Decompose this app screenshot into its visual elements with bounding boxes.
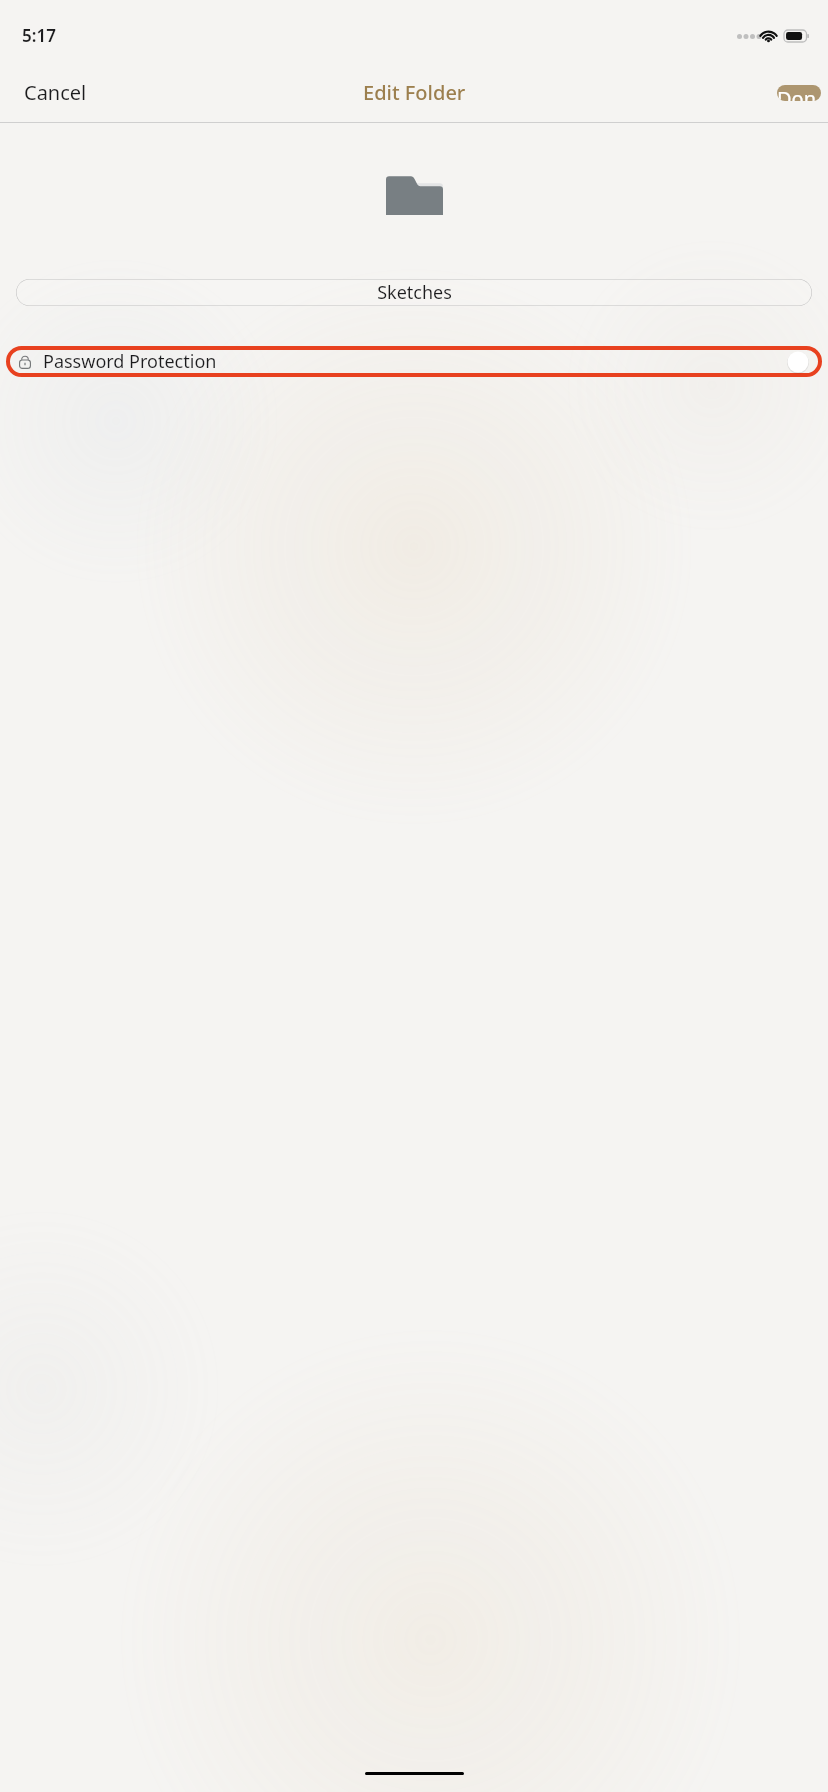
staticText: Done (777, 85, 821, 101)
staticText: Password Protection (43, 349, 217, 374)
staticText: 5:17 (22, 24, 56, 47)
staticText: Sketches (377, 280, 452, 305)
staticText: Edit Folder (363, 79, 466, 106)
button[interactable]: Cancel (12, 71, 99, 114)
button[interactable]: Done (777, 85, 821, 101)
button[interactable]: Sketches (16, 279, 812, 306)
other: Password Protection toggle (787, 351, 809, 373)
staticText: Cancel (24, 79, 87, 106)
button[interactable]: Password Protection (6, 346, 822, 377)
